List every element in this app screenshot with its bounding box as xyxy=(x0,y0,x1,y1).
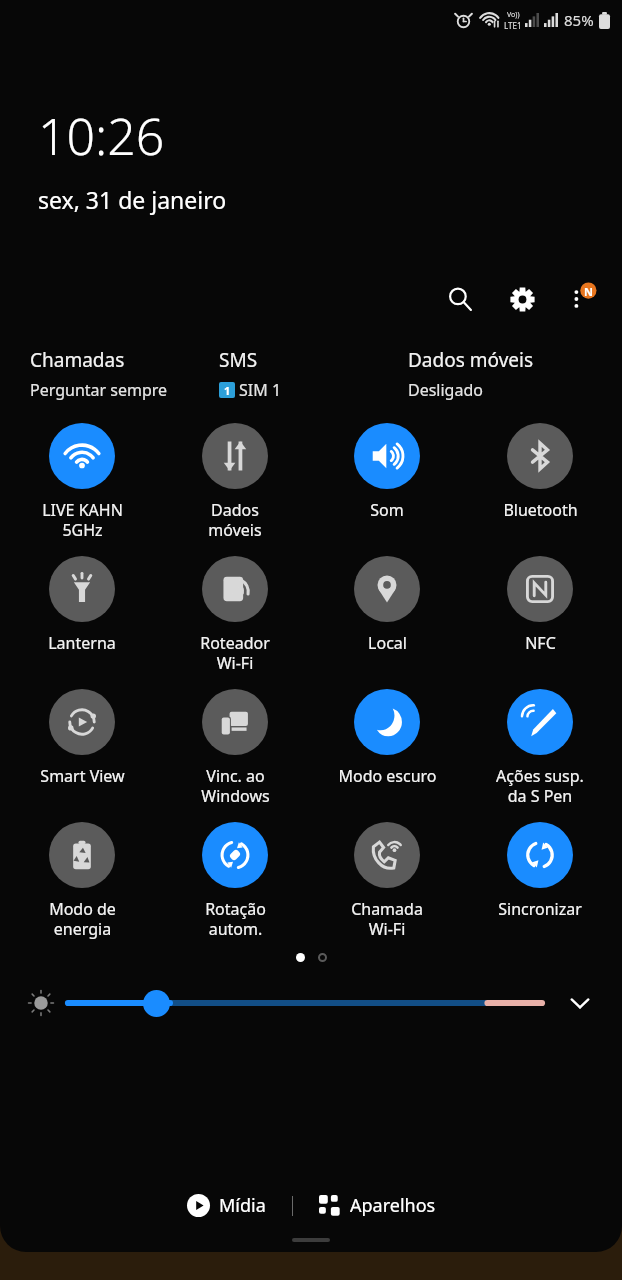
staticText: Rotação autom. xyxy=(205,898,266,939)
staticText: LTE1 xyxy=(504,20,522,31)
staticText: sex, 31 de janeiro xyxy=(38,184,227,215)
staticText: SIM 1 xyxy=(239,379,282,401)
button[interactable]: Rotação autom. xyxy=(165,818,305,943)
button[interactable]: Vinc. ao Windows xyxy=(165,685,305,810)
button[interactable]: Chamada Wi-Fi xyxy=(317,818,457,943)
button[interactable]: Expand brightness settings xyxy=(558,981,602,1025)
staticText: Modo de energia xyxy=(49,898,116,939)
staticText: Som xyxy=(370,499,404,521)
staticText: Aparelhos xyxy=(350,1193,436,1218)
staticText: Chamada Wi-Fi xyxy=(351,898,423,939)
button[interactable]: Local xyxy=(317,552,457,658)
staticText: Vo)) xyxy=(507,10,520,20)
staticText: 85% xyxy=(564,10,594,30)
staticText: N xyxy=(584,284,593,299)
staticText: SMS xyxy=(219,347,258,373)
button[interactable]: Som xyxy=(317,419,457,525)
staticText: Perguntar sempre xyxy=(30,379,168,401)
staticText: Dados móveis xyxy=(408,347,534,373)
staticText: Smart View xyxy=(40,765,125,787)
staticText: Sincronizar xyxy=(498,898,582,920)
staticText: Lanterna xyxy=(48,632,116,654)
button[interactable]: Sincronizar xyxy=(470,818,610,924)
button[interactable]: Modo escuro xyxy=(317,685,457,791)
button[interactable]: Bluetooth xyxy=(470,419,610,525)
button[interactable]: Mídia xyxy=(177,1187,276,1224)
staticText: Dados móveis xyxy=(208,499,262,540)
staticText: 10:26 xyxy=(38,102,165,170)
staticText: NFC xyxy=(525,632,556,654)
staticText: Chamadas xyxy=(30,347,125,373)
button[interactable]: Smart View xyxy=(12,685,152,791)
button[interactable]: Lanterna xyxy=(12,552,152,658)
button[interactable]: Settings xyxy=(498,275,546,323)
button[interactable]: Roteador Wi-Fi xyxy=(165,552,305,677)
button[interactable]: Modo de energia xyxy=(12,818,152,943)
staticText: LIVE KAHN 5GHz xyxy=(42,499,123,540)
button[interactable]: LIVE KAHN 5GHz xyxy=(12,419,152,544)
button[interactable]: Aparelhos xyxy=(309,1187,446,1224)
button[interactable]: Home xyxy=(292,1238,330,1242)
button[interactable]: Ações susp. da S Pen xyxy=(470,685,610,810)
button[interactable]: NFC xyxy=(470,552,610,658)
staticText: Ações susp. da S Pen xyxy=(496,765,584,806)
staticText: Mídia xyxy=(219,1193,266,1218)
button[interactable] xyxy=(68,986,542,1020)
button[interactable]: More options xyxy=(556,275,604,323)
staticText: Roteador Wi-Fi xyxy=(200,632,270,673)
staticText: Bluetooth xyxy=(503,499,578,521)
staticText: Modo escuro xyxy=(338,765,437,787)
button[interactable]: Dados móveis xyxy=(165,419,305,544)
button[interactable]: Search xyxy=(436,275,484,323)
staticText: Vinc. ao Windows xyxy=(201,765,270,806)
staticText: Local xyxy=(368,632,407,654)
staticText: 1 xyxy=(224,383,231,398)
staticText: Desligado xyxy=(408,379,483,401)
